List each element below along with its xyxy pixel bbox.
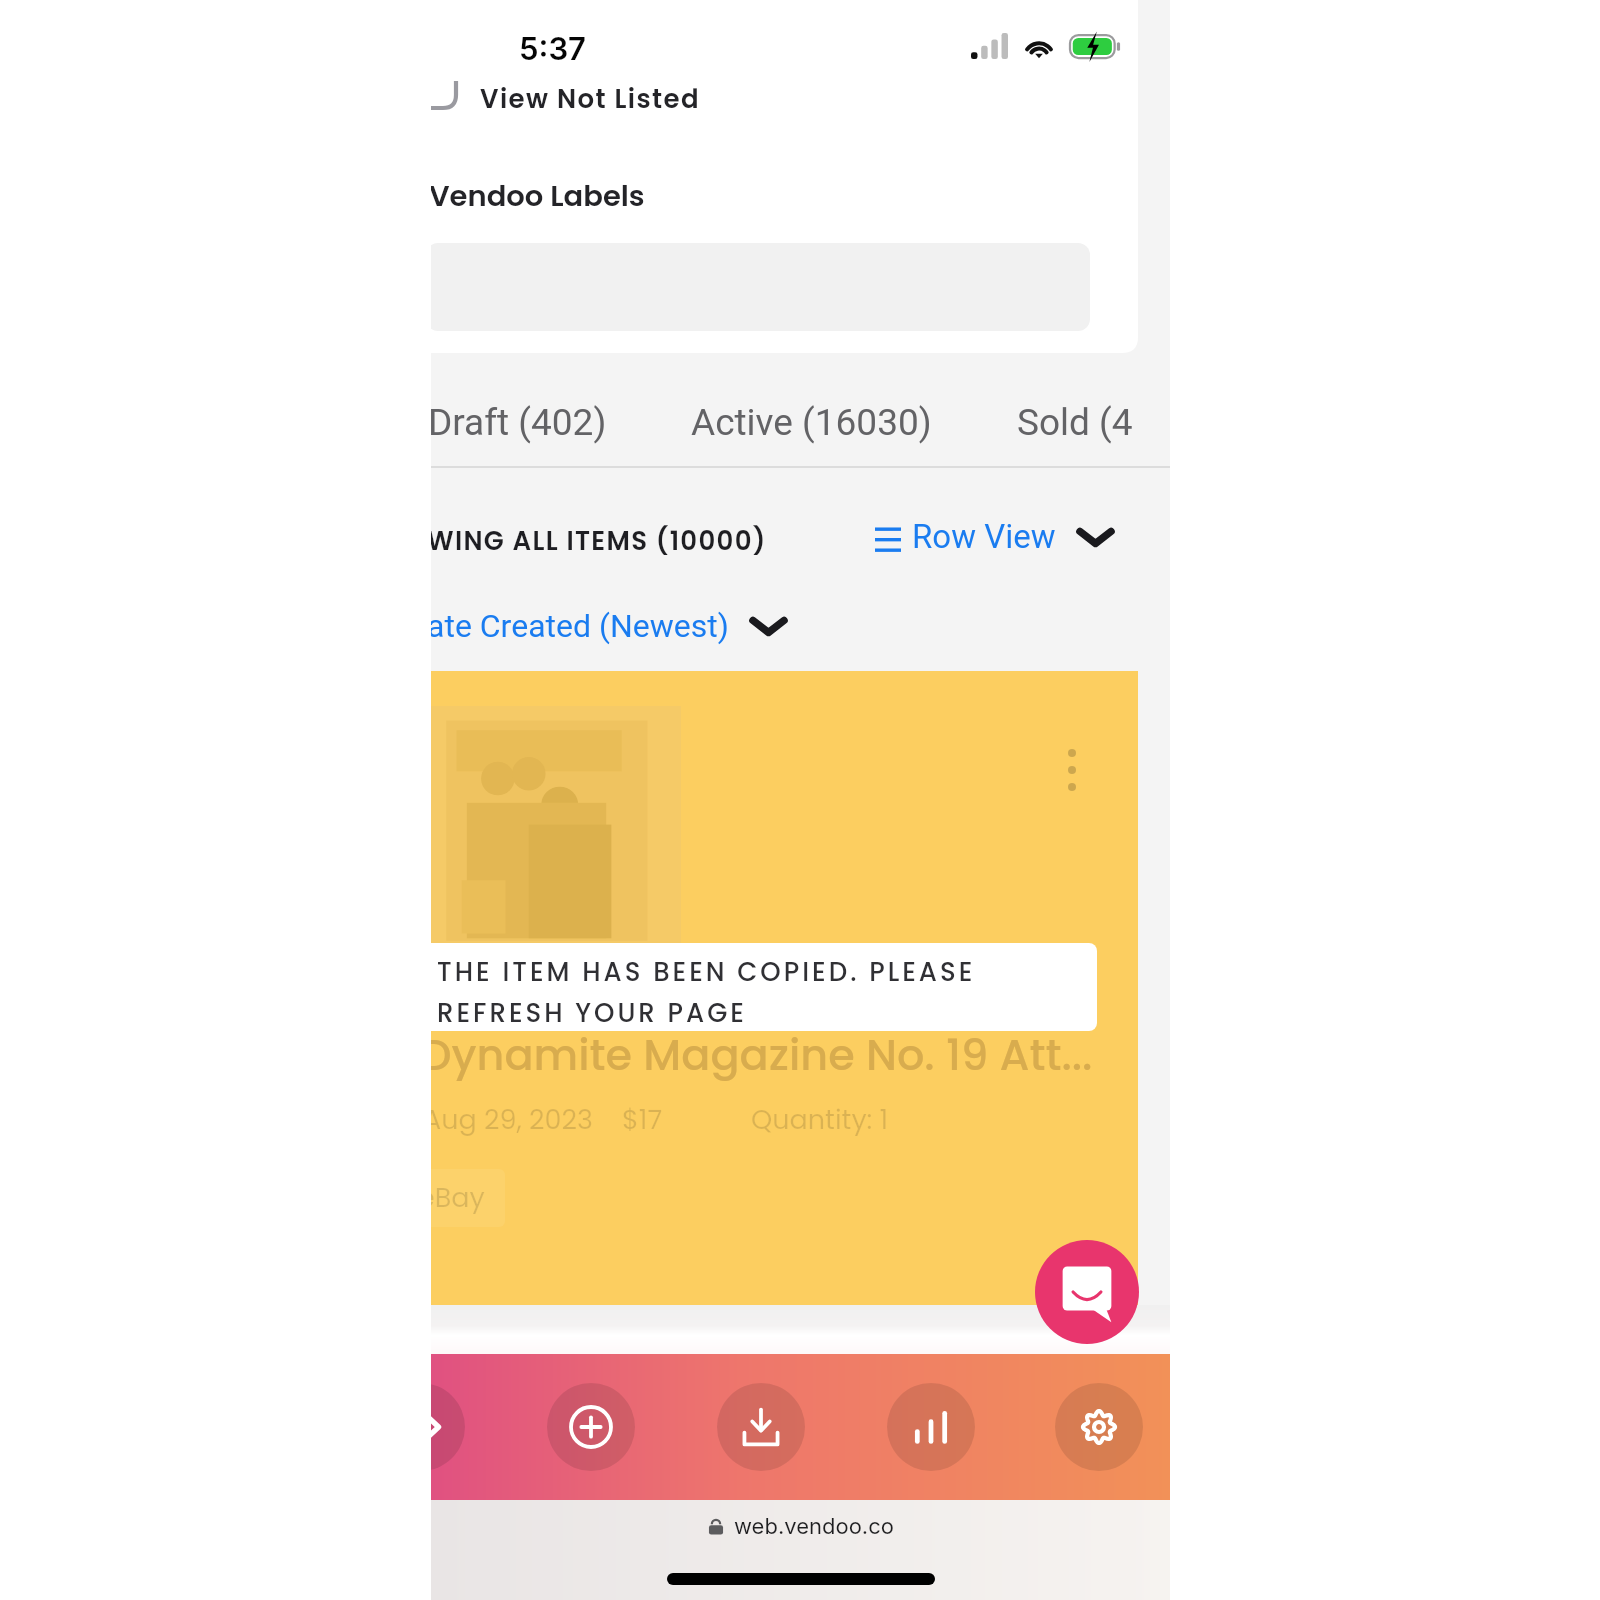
staticText: Row View (912, 517, 1056, 556)
button[interactable]: Sold (4 (1017, 401, 1133, 444)
staticText: Quantity: 1 (751, 1101, 889, 1139)
button[interactable]: Import (717, 1383, 805, 1471)
staticText: Aug 29, 2023 (431, 1101, 593, 1139)
button[interactable]: Open chat (1035, 1240, 1139, 1344)
staticText: View Not Listed (480, 81, 700, 117)
staticText: THE ITEM HAS BEEN COPIED. PLEASE REFRESH… (437, 954, 976, 1031)
button[interactable]: Back (431, 1383, 465, 1471)
button[interactable]: Row View (874, 505, 1115, 567)
button[interactable]: ate Created (Newest) (431, 606, 788, 645)
staticText: web.vendoo.co (734, 1513, 894, 1540)
staticText: 5:37 (519, 30, 586, 68)
button[interactable]: Settings (1055, 1383, 1143, 1471)
staticText: ate Created (Newest) (431, 607, 729, 645)
staticText: WING ALL ITEMS (10000) (431, 523, 767, 559)
staticText: eBay (431, 1179, 485, 1217)
staticText: Vendoo Labels (431, 176, 645, 217)
staticText: $17 (622, 1101, 663, 1139)
button[interactable]: More options (1064, 749, 1080, 795)
staticText: Dynamite Magazine No. 19 Att... (431, 1025, 1093, 1085)
button[interactable]: Draft (402) (431, 401, 607, 444)
button[interactable]: Active (16030) (691, 401, 932, 444)
button[interactable]: Add item (547, 1383, 635, 1471)
button[interactable]: More options (431, 671, 1138, 1305)
button[interactable]: Analytics (887, 1383, 975, 1471)
